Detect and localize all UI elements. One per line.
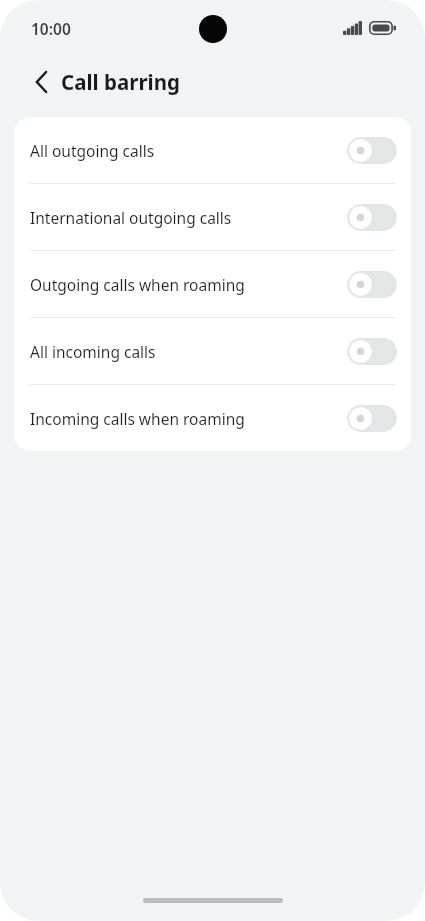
- button[interactable]: Toggle: [347, 204, 397, 231]
- staticText: 10:00: [31, 18, 71, 39]
- button[interactable]: All incoming calls: [14, 318, 411, 384]
- staticText: All incoming calls: [30, 341, 347, 362]
- button[interactable]: Toggle: [347, 338, 397, 365]
- staticText: All outgoing calls: [30, 140, 347, 161]
- staticText: Incoming calls when roaming: [30, 408, 347, 429]
- button[interactable]: Toggle: [347, 137, 397, 164]
- staticText: Call barring: [61, 68, 180, 96]
- button[interactable]: Toggle: [347, 405, 397, 432]
- button[interactable]: International outgoing calls: [14, 184, 411, 250]
- staticText: International outgoing calls: [30, 207, 347, 228]
- button[interactable]: All outgoing calls: [14, 117, 411, 183]
- button[interactable]: Back: [24, 65, 58, 99]
- staticText: Outgoing calls when roaming: [30, 274, 347, 295]
- button[interactable]: Toggle: [347, 271, 397, 298]
- button[interactable]: Outgoing calls when roaming: [14, 251, 411, 317]
- button[interactable]: Incoming calls when roaming: [14, 385, 411, 451]
